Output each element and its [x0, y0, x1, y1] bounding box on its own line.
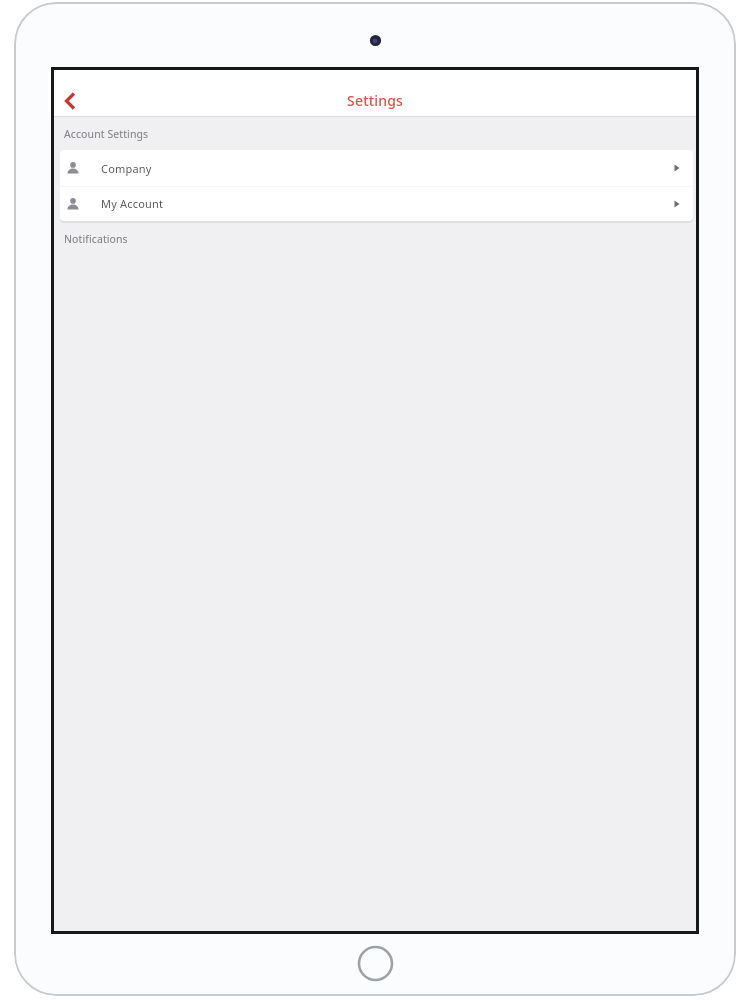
staticText: My Account	[101, 196, 164, 211]
staticText: Account Settings	[64, 127, 149, 141]
staticText: Notifications	[64, 232, 128, 246]
button[interactable]: My Account	[60, 186, 693, 221]
button[interactable]	[54, 70, 94, 116]
staticText: Company	[101, 161, 152, 176]
staticText: Settings	[347, 91, 404, 110]
button[interactable]: Company	[60, 150, 693, 186]
